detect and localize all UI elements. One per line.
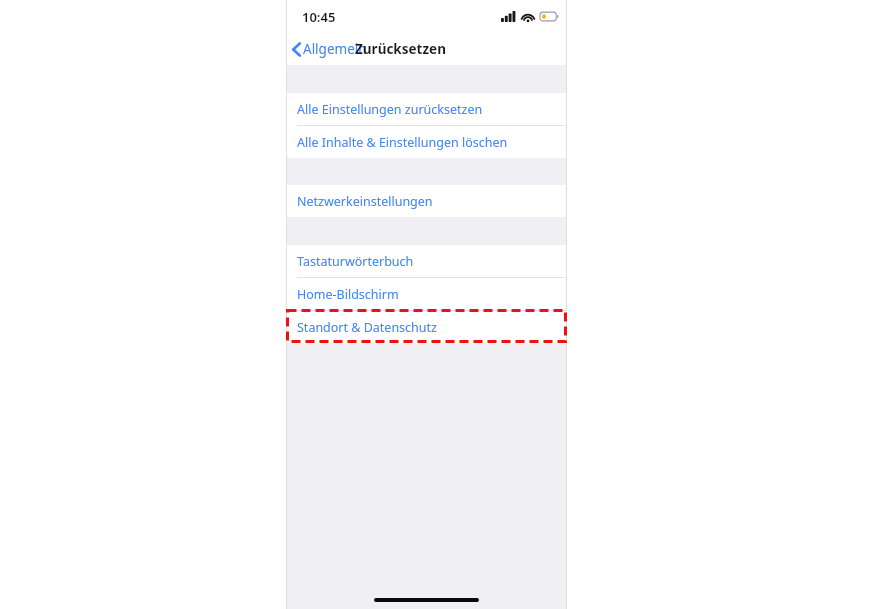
staticText: Home-Bildschirm xyxy=(297,286,399,303)
staticText: Alle Inhalte & Einstellungen löschen xyxy=(297,134,508,151)
button[interactable]: Alle Einstellungen zurücksetzen xyxy=(286,93,567,125)
button[interactable]: Back xyxy=(286,35,375,63)
staticText: Standort & Datenschutz xyxy=(297,319,437,336)
staticText: Netzwerkeinstellungen xyxy=(297,193,433,210)
button[interactable]: Tastaturwörterbuch xyxy=(286,245,567,277)
staticText: Alle Einstellungen zurücksetzen xyxy=(297,101,483,118)
button[interactable]: Netzwerkeinstellungen xyxy=(286,185,567,217)
button[interactable]: Alle Inhalte & Einstellungen löschen xyxy=(286,126,567,158)
other: Back xyxy=(292,42,301,57)
button[interactable]: Home-Bildschirm xyxy=(286,278,567,310)
staticText: Allgemein xyxy=(303,40,367,58)
staticText: Zurücksetzen xyxy=(355,40,446,58)
button[interactable]: Standort & Datenschutz xyxy=(286,311,567,343)
staticText: 10:45 xyxy=(302,8,336,26)
staticText: Tastaturwörterbuch xyxy=(297,253,414,270)
